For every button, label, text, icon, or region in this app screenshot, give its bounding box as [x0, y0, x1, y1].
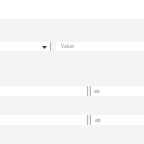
staticText: Value	[61, 43, 74, 50]
staticText: ab	[95, 117, 101, 124]
staticText: ab	[94, 88, 100, 95]
button[interactable]: ab	[90, 115, 144, 125]
button[interactable]: ab	[90, 86, 144, 96]
button[interactable]: Select	[0, 42, 50, 51]
button[interactable]: Value	[56, 42, 144, 51]
